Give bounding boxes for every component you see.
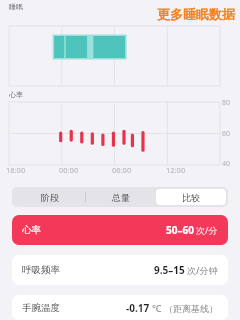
staticText: 心率 bbox=[9, 90, 23, 99]
button[interactable]: 阶段 bbox=[14, 189, 85, 205]
staticText: 60 bbox=[222, 129, 231, 139]
button[interactable]: 比较 bbox=[156, 189, 226, 205]
staticText: 阶段 bbox=[41, 192, 59, 203]
staticText: 次/分钟 bbox=[187, 264, 218, 276]
staticText: 睡眠 bbox=[9, 2, 23, 11]
staticText: 12:00 bbox=[166, 165, 186, 175]
staticText: 次/分 bbox=[196, 224, 218, 236]
button[interactable]: 更多睡眠数据 bbox=[157, 6, 235, 22]
button[interactable]: 总量 bbox=[86, 189, 156, 205]
staticText: 总量 bbox=[112, 192, 130, 203]
staticText: 呼吸频率 bbox=[22, 264, 60, 276]
staticText: °C （距离基线） bbox=[152, 302, 218, 314]
button[interactable]: 呼吸频率 bbox=[12, 255, 228, 285]
staticText: 心率 bbox=[22, 224, 41, 236]
button[interactable]: 心率 bbox=[12, 215, 228, 245]
staticText: 06:00 bbox=[112, 165, 132, 175]
button[interactable]: 手腕温度 bbox=[12, 295, 228, 320]
staticText: 手腕温度 bbox=[22, 302, 60, 314]
staticText: 比较 bbox=[182, 192, 200, 203]
staticText: 40 bbox=[222, 159, 231, 169]
staticText: 50–60 bbox=[166, 223, 194, 237]
staticText: 9.5–15 bbox=[154, 263, 185, 277]
staticText: 18:00 bbox=[6, 165, 26, 175]
staticText: 00:00 bbox=[59, 165, 79, 175]
staticText: -0.17 bbox=[126, 301, 150, 315]
staticText: 80 bbox=[222, 98, 231, 108]
